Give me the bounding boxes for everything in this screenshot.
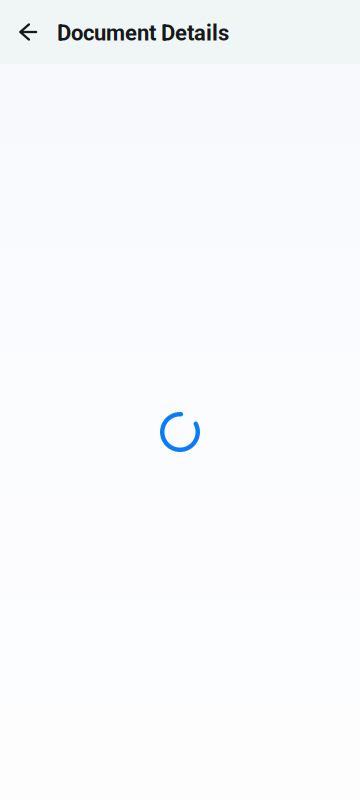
staticText: Document Details	[57, 20, 229, 46]
button[interactable]: Back	[0, 0, 57, 64]
